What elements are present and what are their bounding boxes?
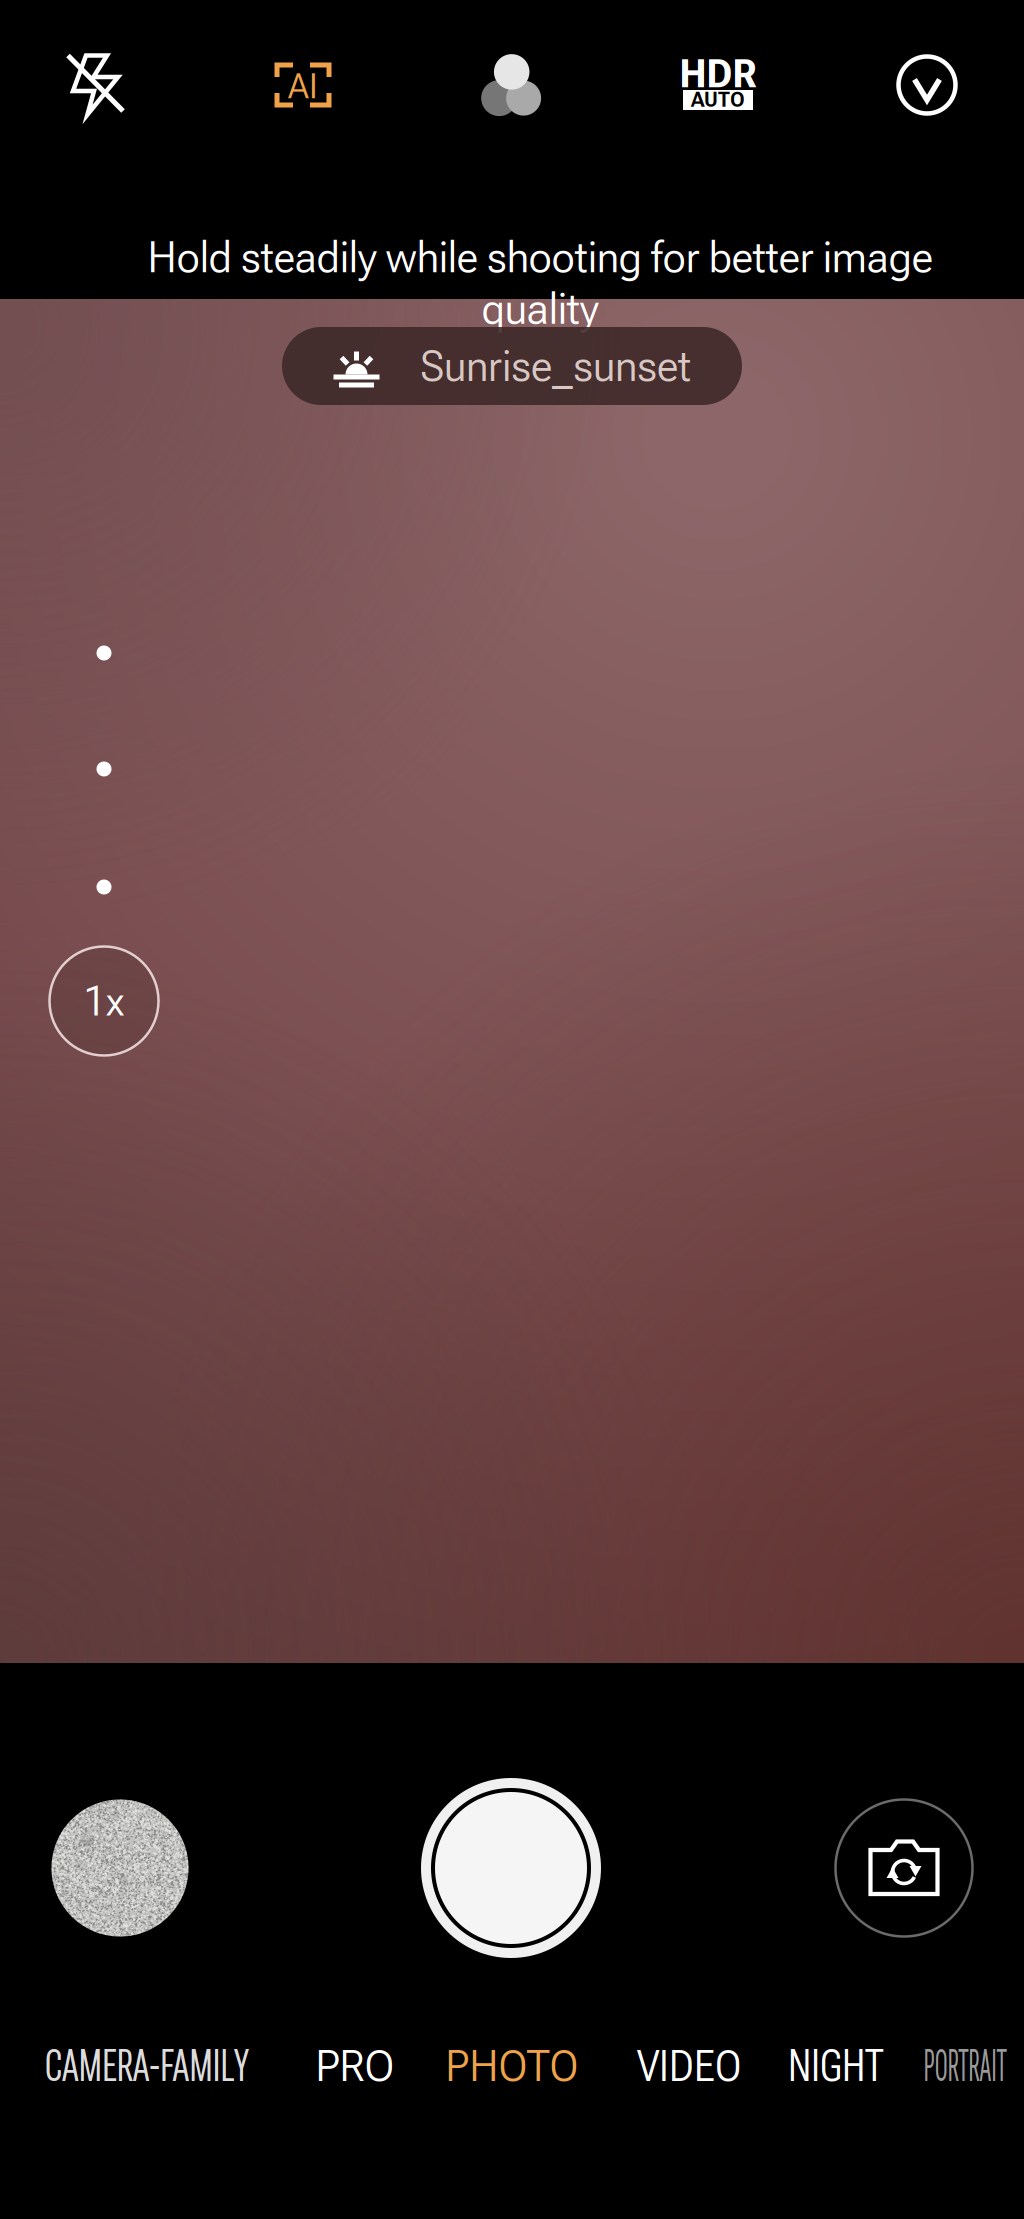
staticText: CAMERA-FAMILY: [41, 2040, 252, 2092]
button[interactable]: Take photo: [418, 1775, 604, 1961]
button[interactable]: PRO: [303, 2020, 406, 2112]
staticText: PORTRAIT: [903, 2040, 1024, 2092]
button[interactable]: Gallery: [51, 1799, 188, 1936]
button[interactable]: PORTRAIT: [891, 2020, 1024, 2112]
staticText: PRO: [315, 2040, 394, 2092]
staticText: HDR: [679, 51, 756, 97]
button[interactable]: CAMERA-FAMILY: [29, 2020, 264, 2112]
button[interactable]: VIDEO: [625, 2020, 753, 2112]
button[interactable]: Switch camera: [835, 1799, 972, 1936]
button[interactable]: HDR auto: [663, 30, 773, 140]
button[interactable]: Sunrise_sunset: [282, 327, 742, 405]
button[interactable]: Colour filters: [456, 30, 566, 140]
button[interactable]: PHOTO: [433, 2020, 590, 2112]
button[interactable]: More settings: [872, 30, 982, 140]
staticText: VIDEO: [637, 2040, 741, 2092]
staticText: Sunrise_sunset: [420, 340, 691, 392]
button[interactable]: Zoom 1x: [47, 944, 160, 1057]
staticText: Hold steadily while shooting for better …: [147, 231, 932, 334]
button[interactable]: NIGHT: [776, 2020, 896, 2112]
staticText: AI: [288, 65, 318, 107]
button[interactable]: AI scene detection: [248, 30, 358, 140]
button[interactable]: Flash off: [40, 30, 150, 140]
staticText: NIGHT: [788, 2040, 884, 2092]
staticText: AUTO: [691, 88, 745, 112]
staticText: PHOTO: [445, 2040, 578, 2092]
staticText: 1x: [84, 976, 124, 1026]
